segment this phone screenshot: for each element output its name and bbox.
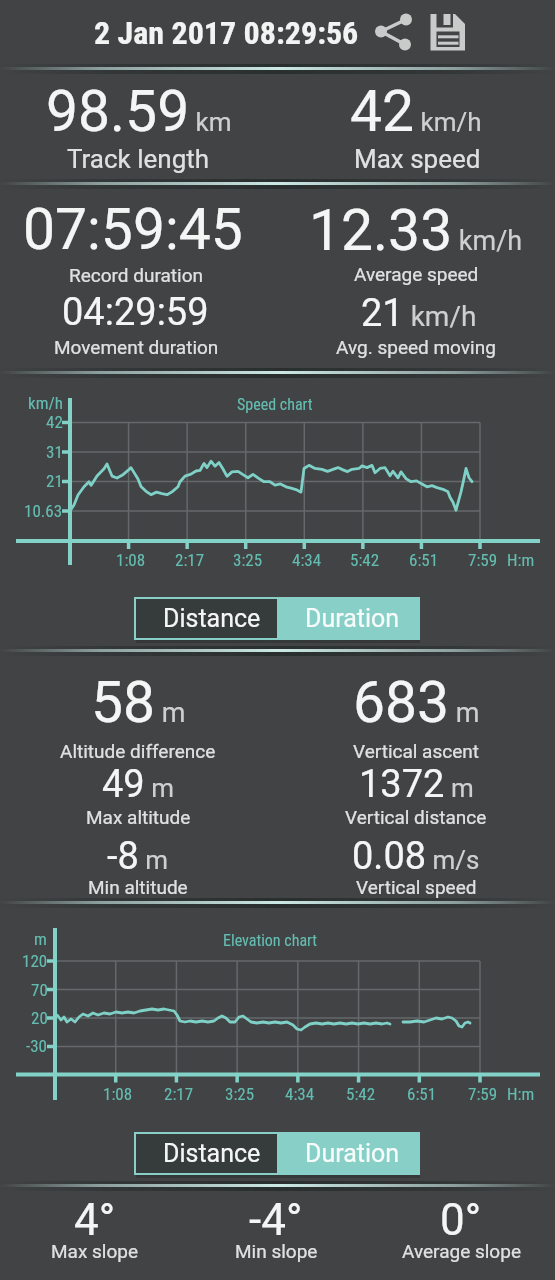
staticText: 70 <box>31 980 48 1000</box>
staticText: 2:17 <box>164 1084 194 1104</box>
staticText: Speed chart <box>237 395 313 414</box>
staticText: 4° <box>74 1194 116 1246</box>
staticText: -4° <box>249 1194 303 1246</box>
staticText: 5:42 <box>350 550 380 570</box>
staticText: 6:51 <box>407 1084 437 1104</box>
staticText: 21 <box>46 471 63 491</box>
staticText: Distance <box>163 1139 261 1168</box>
staticText: Track length <box>67 144 210 174</box>
staticText: 7:59 <box>468 1084 498 1104</box>
staticText: 120 <box>22 951 48 971</box>
staticText: 10.63 <box>24 501 63 521</box>
staticText: Min slope <box>235 1240 318 1262</box>
staticText: H:m <box>507 550 535 570</box>
staticText: 3:25 <box>225 1084 255 1104</box>
staticText: Max altitude <box>86 806 191 828</box>
staticText: 0.08 m/s <box>352 834 480 879</box>
staticText: 31 <box>46 442 63 462</box>
button[interactable]: Duration <box>277 1132 418 1175</box>
staticText: Average slope <box>402 1240 521 1262</box>
staticText: 42 km/h <box>350 78 482 145</box>
staticText: Max speed <box>354 144 481 174</box>
button[interactable] <box>368 8 418 58</box>
staticText: 12.33 km/h <box>309 197 523 264</box>
staticText: 6:51 <box>409 550 439 570</box>
staticText: Vertical distance <box>345 806 487 828</box>
staticText: 3:25 <box>233 550 263 570</box>
staticText: Max slope <box>51 1240 139 1262</box>
staticText: 21 km/h <box>361 291 477 336</box>
staticText: Duration <box>305 1139 400 1168</box>
staticText: Record duration <box>69 264 204 286</box>
staticText: 1:08 <box>116 550 146 570</box>
staticText: 4:34 <box>292 550 322 570</box>
staticText: Vertical speed <box>356 876 477 898</box>
staticText: 20 <box>31 1008 48 1028</box>
button[interactable]: Duration <box>277 597 418 640</box>
staticText: 98.59 km <box>46 78 232 145</box>
staticText: 5:42 <box>346 1084 376 1104</box>
staticText: Duration <box>305 604 400 633</box>
staticText: 1372 m <box>359 762 474 807</box>
staticText: H:m <box>507 1084 535 1104</box>
staticText: km/h <box>28 393 63 413</box>
staticText: Avg. speed moving <box>336 336 496 358</box>
staticText: 2 Jan 2017 08:29:56 <box>94 14 359 52</box>
staticText: m <box>34 929 47 949</box>
staticText: 4:34 <box>285 1084 315 1104</box>
staticText: 42 <box>46 412 63 432</box>
staticText: Elevation chart <box>223 931 318 950</box>
staticText: Distance <box>163 604 261 633</box>
staticText: 2:17 <box>175 550 205 570</box>
staticText: Altitude difference <box>60 740 216 762</box>
staticText: 7:59 <box>468 550 498 570</box>
staticText: Vertical ascent <box>353 740 479 762</box>
staticText: 04:29:59 <box>62 290 209 335</box>
staticText: 683 m <box>353 669 480 736</box>
staticText: 07:59:45 <box>23 196 243 263</box>
button[interactable]: Distance <box>134 597 277 640</box>
button[interactable] <box>422 8 472 58</box>
staticText: -30 <box>26 1036 48 1056</box>
staticText: 1:08 <box>103 1084 133 1104</box>
staticText: Average speed <box>354 263 479 285</box>
staticText: Min altitude <box>88 876 188 898</box>
staticText: 0° <box>440 1194 482 1246</box>
button[interactable]: Distance <box>134 1132 277 1175</box>
staticText: 58 m <box>91 669 186 736</box>
staticText: 49 m <box>102 762 174 807</box>
staticText: -8 m <box>107 834 169 879</box>
staticText: Movement duration <box>54 336 219 358</box>
